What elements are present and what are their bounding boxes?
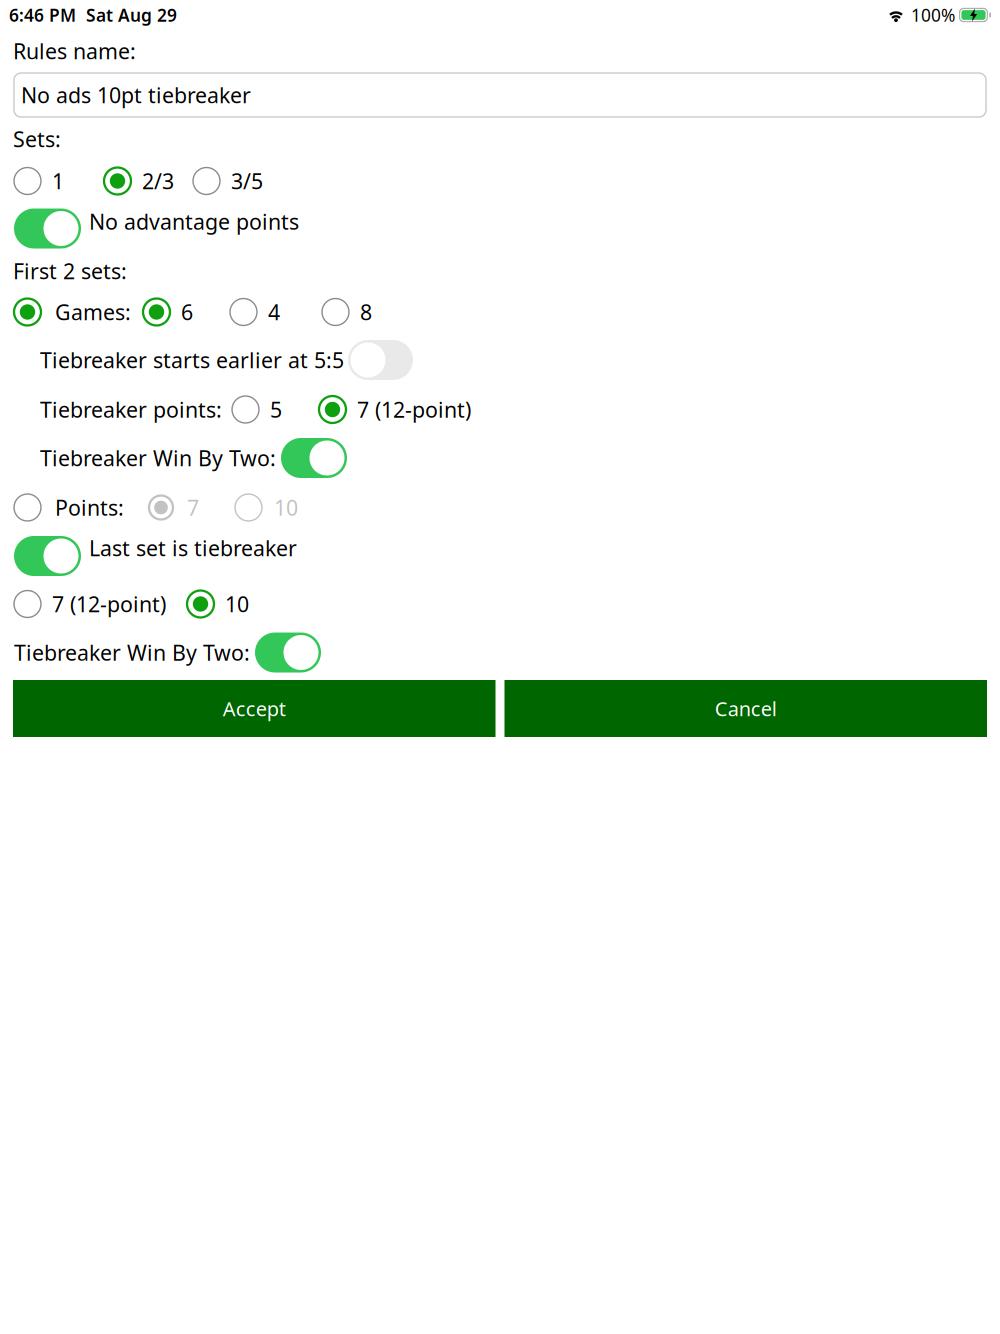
staticText: Points: [55, 493, 124, 522]
button[interactable]: 10 [187, 590, 249, 618]
button[interactable]: Last set is tiebreaker [14, 536, 297, 576]
button[interactable]: 5 [232, 395, 282, 424]
staticText: 7 (12-point) [357, 395, 471, 424]
button[interactable]: 1 [14, 167, 64, 195]
button[interactable]: Cancel [504, 680, 987, 737]
staticText: 7 (12-point) [52, 590, 166, 618]
button[interactable]: 3/5 [193, 167, 263, 195]
staticText: 8 [360, 298, 372, 326]
staticText [955, 3, 960, 26]
staticText: 3/5 [231, 167, 263, 195]
staticText: 4 [268, 298, 280, 326]
staticText: Tiebreaker starts earlier at 5:5 [40, 346, 344, 374]
staticText: Games: [55, 298, 131, 326]
staticText: 6:46 PM [9, 3, 76, 26]
staticText: No advantage points [89, 207, 299, 236]
staticText: Cancel [715, 695, 777, 722]
staticText: 10 [225, 590, 249, 618]
staticText: 2/3 [142, 167, 174, 195]
button[interactable]: 6 [143, 298, 193, 326]
button[interactable]: Points: [14, 493, 124, 522]
staticText: 1 [52, 167, 64, 195]
button[interactable]: 7 (12-point) [14, 590, 166, 618]
staticText: Tiebreaker points: [40, 395, 222, 424]
staticText: 10 [274, 493, 298, 522]
staticText: 6 [181, 298, 193, 326]
staticText: 5 [270, 395, 282, 424]
staticText: 100% [906, 3, 955, 26]
staticText: Sat Aug 29 [76, 3, 177, 26]
button[interactable]: Tiebreaker starts earlier at 5:5 [40, 340, 413, 380]
button[interactable]: 7 (12-point) [319, 395, 471, 424]
staticText: 7 [187, 493, 199, 522]
button[interactable]: Tiebreaker Win By Two: [14, 632, 321, 672]
staticText: Tiebreaker Win By Two: [40, 444, 276, 472]
staticText: Rules name: [13, 37, 136, 65]
button[interactable]: Games: [14, 298, 131, 326]
button[interactable]: 10 [235, 493, 298, 522]
button[interactable]: 2/3 [104, 167, 174, 195]
button[interactable]: 7 [149, 493, 199, 522]
staticText: No ads 10pt tiebreaker [21, 81, 251, 109]
staticText: Sets: [13, 125, 61, 153]
staticText: Last set is tiebreaker [89, 534, 297, 562]
button[interactable]: 8 [322, 298, 372, 326]
staticText: Tiebreaker Win By Two: [14, 638, 250, 667]
button[interactable]: 4 [230, 298, 280, 326]
button[interactable]: Accept [13, 680, 495, 737]
staticText: Accept [223, 695, 286, 722]
button[interactable]: No advantage points [14, 208, 299, 248]
staticText: First 2 sets: [13, 257, 127, 285]
button[interactable]: Tiebreaker Win By Two: [40, 438, 347, 478]
